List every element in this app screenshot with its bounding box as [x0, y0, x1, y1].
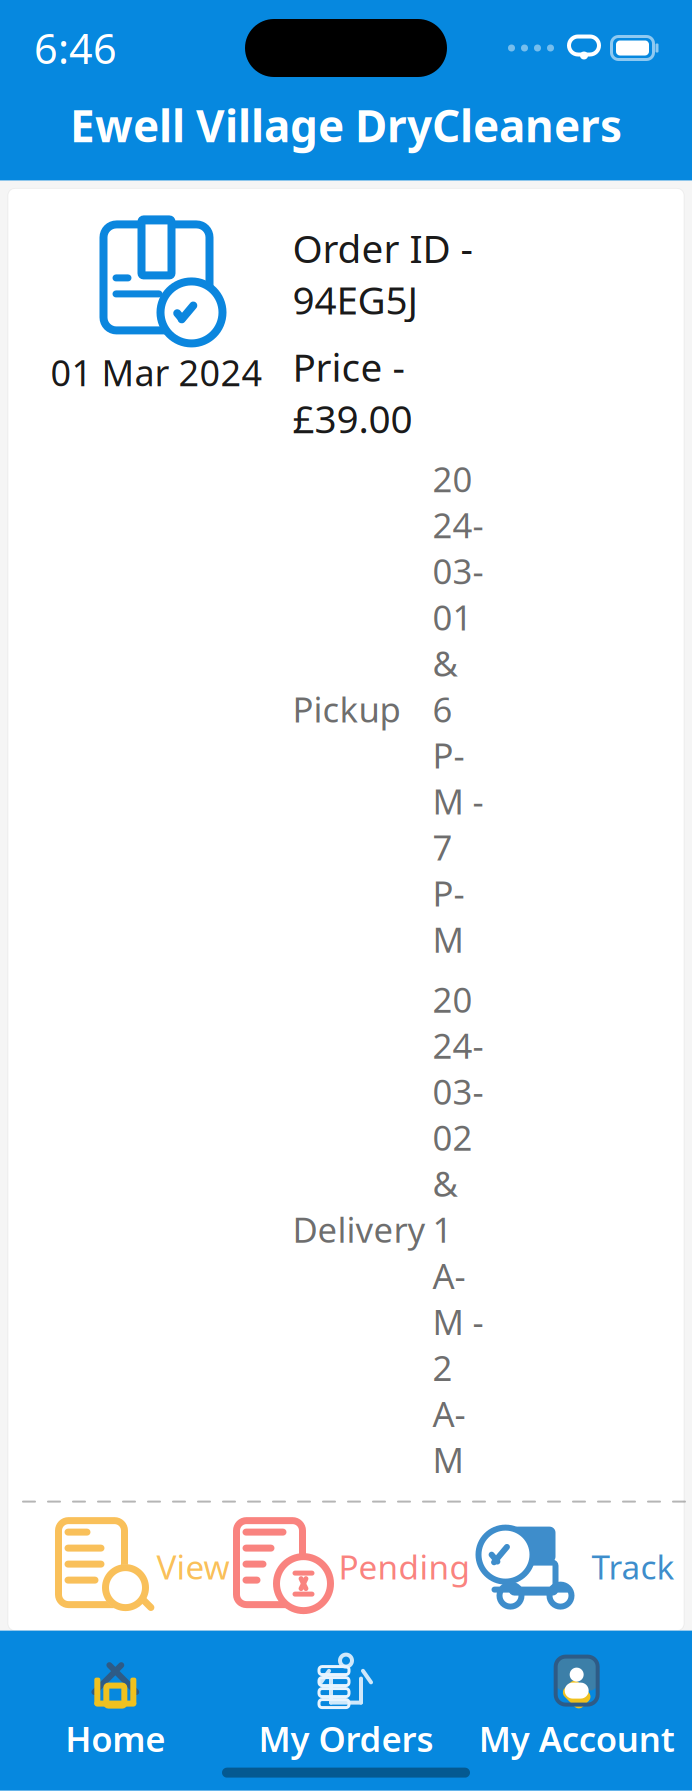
staticText: Track [591, 1544, 674, 1589]
staticText: My Orders [258, 1716, 433, 1762]
staticText: 6:46 [34, 21, 117, 75]
staticText: Ewell Village DryCleaners [70, 96, 622, 154]
button[interactable]: Track [477, 1517, 674, 1617]
button[interactable]: Home [0, 1648, 231, 1768]
staticText: Order ID - 94EG5J [292, 222, 472, 325]
staticText: Price - £39.00 [292, 341, 412, 444]
staticText: 2024-03-01 & 6PM - 7PM [432, 456, 483, 962]
staticText: View [156, 1544, 229, 1589]
staticText: Pending [338, 1544, 470, 1589]
staticText: Delivery [292, 1206, 425, 1252]
button[interactable]: View [58, 1513, 229, 1621]
staticText: Home [65, 1716, 165, 1762]
button[interactable]: My Account [461, 1648, 692, 1768]
staticText: 01 Mar 2024 [50, 348, 262, 396]
button[interactable]: Pending [236, 1513, 470, 1621]
staticText: 2024-03-02 & 1AM - 2AM [432, 976, 483, 1483]
staticText: My Account [479, 1716, 675, 1762]
button[interactable]: My Orders [231, 1648, 461, 1768]
staticText: Pickup [292, 686, 400, 732]
